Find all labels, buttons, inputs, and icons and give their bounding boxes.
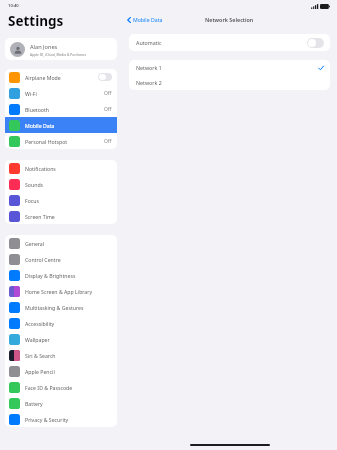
button[interactable]: Wi-Fi — [5, 85, 117, 101]
staticText: General — [25, 240, 45, 247]
staticText: Accessibility — [25, 320, 55, 327]
staticText: Apple ID, iCloud, Media & Purchases — [30, 52, 86, 56]
staticText: Control Centre — [25, 256, 61, 263]
staticText: Off — [104, 138, 112, 145]
staticText: Sounds — [25, 181, 44, 188]
button[interactable]: Apple Pencil — [5, 363, 117, 379]
staticText: Multitasking & Gestures — [25, 304, 84, 311]
button[interactable]: Accessibility — [5, 315, 117, 331]
button[interactable]: Automatic network selection toggle — [307, 38, 324, 48]
button[interactable]: Sounds — [5, 176, 117, 192]
staticText: Notifications — [25, 165, 56, 172]
button[interactable]: Alan Jones — [5, 38, 117, 60]
button[interactable]: Siri & Search — [5, 347, 117, 363]
staticText: Screen Time — [25, 213, 55, 220]
button[interactable]: Notifications — [5, 160, 117, 176]
staticText: Siri & Search — [25, 352, 56, 359]
button[interactable]: Mobile Data — [5, 117, 117, 133]
other: Selected — [318, 65, 324, 71]
button[interactable]: Network 2 — [129, 75, 330, 90]
button[interactable]: Mobile Data — [122, 14, 167, 25]
button[interactable]: Screen Time — [5, 208, 117, 224]
staticText: Network 1 — [136, 64, 162, 71]
staticText: Home Screen & App Library — [25, 288, 93, 295]
staticText: 10:40 — [8, 3, 19, 9]
staticText: Personal Hotspot — [25, 138, 68, 145]
button[interactable]: Privacy & Security — [5, 411, 117, 427]
button[interactable]: Control Centre — [5, 251, 117, 267]
staticText: Mobile Data — [25, 122, 55, 129]
staticText: Network Selection — [205, 16, 254, 23]
staticText: Alan Jones — [30, 43, 58, 51]
button[interactable]: Face ID & Passcode — [5, 379, 117, 395]
button[interactable]: Home Screen & App Library — [5, 283, 117, 299]
button[interactable]: Wallpaper — [5, 331, 117, 347]
staticText: Off — [104, 90, 112, 97]
staticText: Settings — [8, 12, 64, 30]
staticText: Display & Brightness — [25, 272, 76, 279]
staticText: Automatic — [136, 39, 162, 46]
button[interactable]: General — [5, 235, 117, 251]
staticText: Wi-Fi — [25, 90, 37, 97]
staticText: Bluetooth — [25, 106, 50, 113]
staticText: Wallpaper — [25, 336, 50, 343]
button[interactable]: Automatic — [129, 34, 330, 51]
button[interactable]: Personal Hotspot — [5, 133, 117, 149]
button[interactable]: Network 1 — [129, 60, 330, 75]
button[interactable]: Display & Brightness — [5, 267, 117, 283]
staticText: Face ID & Passcode — [25, 384, 73, 391]
button[interactable]: Airplane Mode — [5, 69, 117, 85]
button[interactable]: Bluetooth — [5, 101, 117, 117]
staticText: Network 2 — [136, 79, 162, 86]
staticText: Focus — [25, 197, 40, 204]
staticText: Airplane Mode — [25, 74, 61, 81]
staticText: Apple Pencil — [25, 368, 55, 375]
button[interactable]: Battery — [5, 395, 117, 411]
staticText: Mobile Data — [133, 16, 163, 23]
button[interactable]: Airplane Mode toggle — [98, 73, 112, 81]
staticText: Off — [104, 106, 112, 113]
button[interactable]: Focus — [5, 192, 117, 208]
staticText: Battery — [25, 400, 43, 407]
staticText: Privacy & Security — [25, 416, 69, 423]
button[interactable]: Multitasking & Gestures — [5, 299, 117, 315]
